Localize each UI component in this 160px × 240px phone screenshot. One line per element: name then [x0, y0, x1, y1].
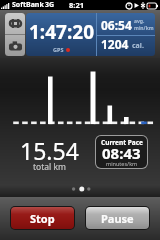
- staticText: minutes/km: [106, 160, 138, 167]
- staticText: total km: [33, 161, 66, 173]
- button[interactable]: Current Pace: [96, 136, 147, 168]
- button[interactable]: Pause: [86, 207, 149, 229]
- staticText: 08:43: [102, 143, 141, 163]
- button[interactable]: Camera: [5, 35, 25, 56]
- staticText: SoftBank: [12, 0, 44, 10]
- staticText: 1:47:20: [29, 19, 95, 45]
- staticText: 8:21: [69, 0, 84, 10]
- button[interactable]: Stop: [11, 207, 74, 229]
- staticText: 1204: [101, 36, 129, 52]
- staticText: GPS: [53, 46, 64, 53]
- staticText: 06:54: [101, 17, 132, 33]
- staticText: cal.: [132, 41, 144, 51]
- button[interactable]: Map view: [5, 13, 25, 34]
- staticText: 3G: [45, 0, 55, 10]
- staticText: 15.54: [20, 135, 79, 166]
- staticText: min/km: [134, 25, 154, 32]
- staticText: avg.: [134, 18, 145, 25]
- staticText: Stop: [30, 211, 55, 226]
- staticText: Pause: [101, 211, 134, 226]
- staticText: Current Pace: [101, 138, 143, 147]
